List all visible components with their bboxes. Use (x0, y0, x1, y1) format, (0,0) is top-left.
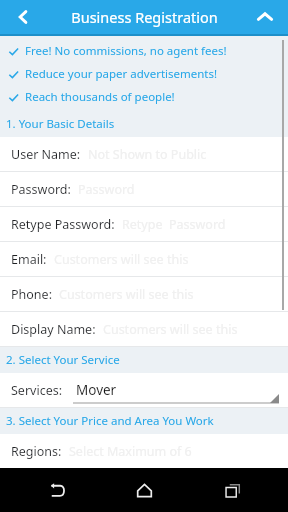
staticText: 1. Your Basic Details (6, 116, 115, 132)
staticText: Mover (76, 381, 117, 399)
button[interactable]: Display Name: (0, 312, 288, 347)
staticText: Customers will see this (59, 286, 194, 303)
button[interactable]: Retype Password: (0, 207, 288, 242)
staticText: 2. Select Your Service (6, 352, 120, 368)
staticText: 3. Select Your Price and Area You Work (6, 413, 214, 429)
staticText: Password (78, 181, 135, 198)
staticText: Customers will see this (54, 251, 189, 268)
staticText: Regions: (11, 443, 62, 460)
button[interactable]: Email: (0, 242, 288, 277)
staticText: Services: (11, 382, 63, 399)
staticText: User Name: (11, 146, 81, 163)
staticText: Email: (11, 251, 47, 268)
button[interactable]: Back (24, 468, 88, 512)
button[interactable]: Password: (0, 172, 288, 207)
button[interactable]: Recent apps (200, 468, 264, 512)
button[interactable]: User Name: (0, 137, 288, 172)
button[interactable]: Phone: (0, 277, 288, 312)
button[interactable]: Back (0, 0, 46, 34)
staticText: Password: (11, 181, 71, 198)
staticText: Free! No commissions, no agent fees! (25, 43, 227, 59)
staticText: Not Shown to Public (88, 146, 207, 163)
button[interactable]: Mover (73, 375, 279, 405)
staticText: Display Name: (11, 321, 96, 338)
staticText: Reduce your paper advertisements! (25, 66, 218, 82)
staticText: Customers will see this (103, 321, 238, 338)
button[interactable]: Regions: (0, 434, 288, 468)
button[interactable]: Home (112, 468, 176, 512)
staticText: Reach thousands of people! (25, 89, 175, 105)
staticText: Phone: (11, 286, 52, 303)
button[interactable]: Collapse (242, 0, 288, 34)
staticText: Retype Password: (11, 216, 115, 233)
staticText: Business Registration (71, 7, 218, 27)
staticText: Select Maximum of 6 (69, 443, 192, 460)
staticText: Retype Password (122, 216, 226, 233)
